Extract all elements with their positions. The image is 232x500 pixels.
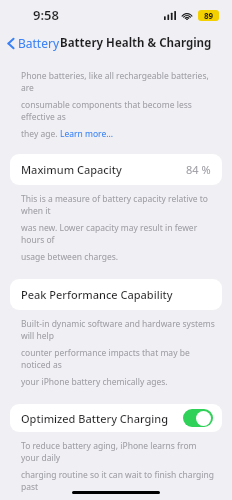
staticText: your iPhone battery chemically ages. bbox=[21, 376, 168, 388]
button[interactable]: Peak Performance Capability bbox=[10, 279, 222, 310]
button[interactable]: Battery bbox=[0, 33, 64, 53]
staticText: Phone batteries, like all rechargeable b… bbox=[21, 70, 216, 94]
staticText: they age. bbox=[21, 128, 60, 140]
staticText: counter performance impacts that may be … bbox=[21, 347, 216, 371]
button[interactable]: Optimized Battery Charging bbox=[10, 404, 222, 432]
staticText: Maximum Capacity bbox=[21, 162, 122, 177]
staticText: Optimized Battery Charging bbox=[21, 411, 169, 426]
staticText: 89 bbox=[204, 10, 214, 21]
staticText: consumable components that become less e… bbox=[21, 99, 216, 123]
staticText: usage between charges. bbox=[21, 251, 119, 263]
staticText: was new. Lower capacity may result in fe… bbox=[21, 222, 216, 246]
staticText: To reduce battery aging, iPhone learns f… bbox=[21, 440, 216, 464]
staticText: Built-in dynamic software and hardware s… bbox=[21, 318, 216, 342]
button[interactable]: Learn more... bbox=[60, 128, 114, 140]
staticText: 84 % bbox=[186, 162, 211, 177]
staticText: Battery Health & Charging bbox=[60, 35, 212, 51]
button[interactable]: Optimized Battery Charging toggle, on bbox=[183, 409, 213, 427]
staticText: This is a measure of battery capacity re… bbox=[21, 193, 216, 217]
staticText: charging routine so it can wait to finis… bbox=[21, 469, 216, 493]
staticText: 9:58 bbox=[33, 6, 59, 24]
staticText: Battery bbox=[18, 35, 60, 51]
button[interactable]: Maximum Capacity bbox=[10, 154, 222, 185]
staticText: Peak Performance Capability bbox=[21, 287, 173, 302]
